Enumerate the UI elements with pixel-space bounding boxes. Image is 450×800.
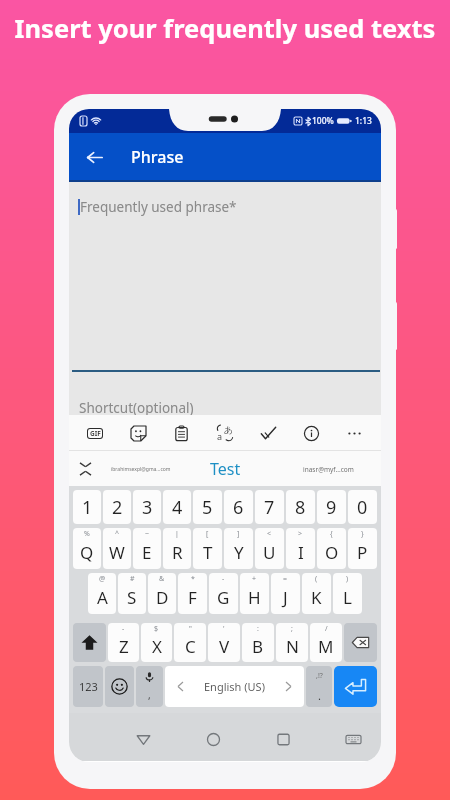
staticText: あ (224, 424, 234, 435)
staticText: Test (210, 458, 241, 480)
staticText: GIF (90, 429, 101, 438)
staticText: % (84, 529, 90, 539)
staticText: # (130, 574, 135, 584)
button[interactable]: | (163, 528, 191, 569)
staticText: 1:13 (355, 115, 372, 127)
button[interactable]: Expand suggestions (74, 458, 96, 480)
button[interactable]: 2 (103, 490, 131, 524)
button[interactable]: 1 (73, 490, 101, 524)
button[interactable]: Back (77, 140, 111, 174)
button[interactable]: { (317, 528, 346, 569)
staticText: ^ (115, 529, 120, 539)
button[interactable]: 5 (193, 490, 222, 524)
button[interactable]: ] (224, 528, 253, 569)
button[interactable]: Period (306, 666, 332, 707)
button[interactable]: ' (208, 623, 240, 662)
staticText: K (311, 586, 322, 609)
staticText: } (361, 529, 364, 539)
button[interactable]: Emoji (105, 666, 134, 707)
button[interactable]: GIF (82, 420, 108, 446)
button[interactable]: Shift (73, 623, 106, 662)
staticText: $ (154, 624, 159, 634)
button[interactable]: - (209, 573, 238, 614)
staticText: inasr@myf...com (303, 465, 354, 474)
button[interactable]: Back (129, 725, 157, 753)
staticText: 0 (357, 495, 368, 520)
button[interactable]: 4 (163, 490, 191, 524)
staticText: @ (99, 574, 106, 584)
button[interactable]: : (242, 623, 274, 662)
button[interactable]: 123 (73, 666, 103, 707)
staticText: Z (119, 635, 129, 658)
staticText: P (357, 541, 368, 564)
button[interactable]: > (286, 528, 315, 569)
staticText: 7 (264, 495, 275, 520)
button[interactable]: Home (199, 725, 227, 753)
staticText: 8 (295, 495, 306, 520)
button[interactable]: ) (333, 573, 362, 614)
staticText: 1 (82, 495, 93, 520)
button[interactable]: Test (194, 455, 256, 483)
staticText: G (217, 586, 230, 609)
button[interactable]: - (108, 623, 139, 662)
button[interactable]: Spell check (255, 420, 281, 446)
button[interactable]: [ (193, 528, 222, 569)
button[interactable]: * (178, 573, 207, 614)
button[interactable]: Stickers (125, 420, 151, 446)
button[interactable]: ^ (103, 528, 131, 569)
staticText: O (325, 541, 339, 564)
staticText: Q (80, 541, 94, 564)
button[interactable]: + (240, 573, 269, 614)
button[interactable]: 8 (286, 490, 315, 524)
button[interactable]: Clipboard (168, 420, 194, 446)
staticText: : (257, 624, 259, 634)
staticText: 4 (172, 495, 183, 520)
button[interactable]: ~ (133, 528, 161, 569)
button[interactable]: English (US) (165, 666, 304, 707)
button[interactable]: < (255, 528, 284, 569)
staticText: * (191, 574, 195, 584)
staticText: N (286, 635, 299, 658)
button[interactable]: Backspace (344, 623, 377, 662)
button[interactable]: 6 (224, 490, 253, 524)
button[interactable]: @ (88, 573, 116, 614)
button[interactable]: Info (298, 420, 324, 446)
button[interactable]: " (174, 623, 206, 662)
button[interactable]: } (348, 528, 377, 569)
staticText: I (298, 541, 304, 564)
staticText: 2 (112, 495, 123, 520)
staticText: a (217, 430, 223, 442)
button[interactable]: 7 (255, 490, 284, 524)
button[interactable]: # (118, 573, 146, 614)
staticText: / (325, 624, 328, 634)
staticText: U (263, 541, 276, 564)
button[interactable]: Enter (334, 666, 377, 707)
button[interactable]: Voice input (136, 666, 163, 707)
button[interactable]: % (73, 528, 101, 569)
button[interactable]: Recent apps (269, 725, 297, 753)
button[interactable]: ; (276, 623, 308, 662)
staticText: W (109, 541, 125, 564)
button[interactable]: Hide keyboard (339, 725, 367, 753)
button[interactable]: 0 (348, 490, 377, 524)
button[interactable]: = (271, 573, 300, 614)
button[interactable]: 9 (317, 490, 346, 524)
button[interactable]: Translate (212, 420, 238, 446)
staticText: T (203, 541, 213, 564)
button[interactable]: ibrahimsexpl@gma...com (103, 455, 179, 483)
staticText: 100% (312, 115, 334, 127)
staticText: < (267, 529, 272, 539)
button[interactable]: / (310, 623, 342, 662)
staticText: { (330, 529, 333, 539)
button[interactable]: More options (341, 420, 367, 446)
staticText: Phrase (131, 146, 184, 168)
staticText: D (156, 586, 169, 609)
button[interactable]: inasr@myf...com (297, 455, 359, 483)
button[interactable]: & (148, 573, 176, 614)
button[interactable]: ( (302, 573, 331, 614)
button[interactable]: Frequently used phrase* (78, 199, 381, 217)
button[interactable]: $ (141, 623, 172, 662)
staticText: , (148, 688, 151, 702)
staticText: V (219, 635, 230, 658)
button[interactable]: 3 (133, 490, 161, 524)
